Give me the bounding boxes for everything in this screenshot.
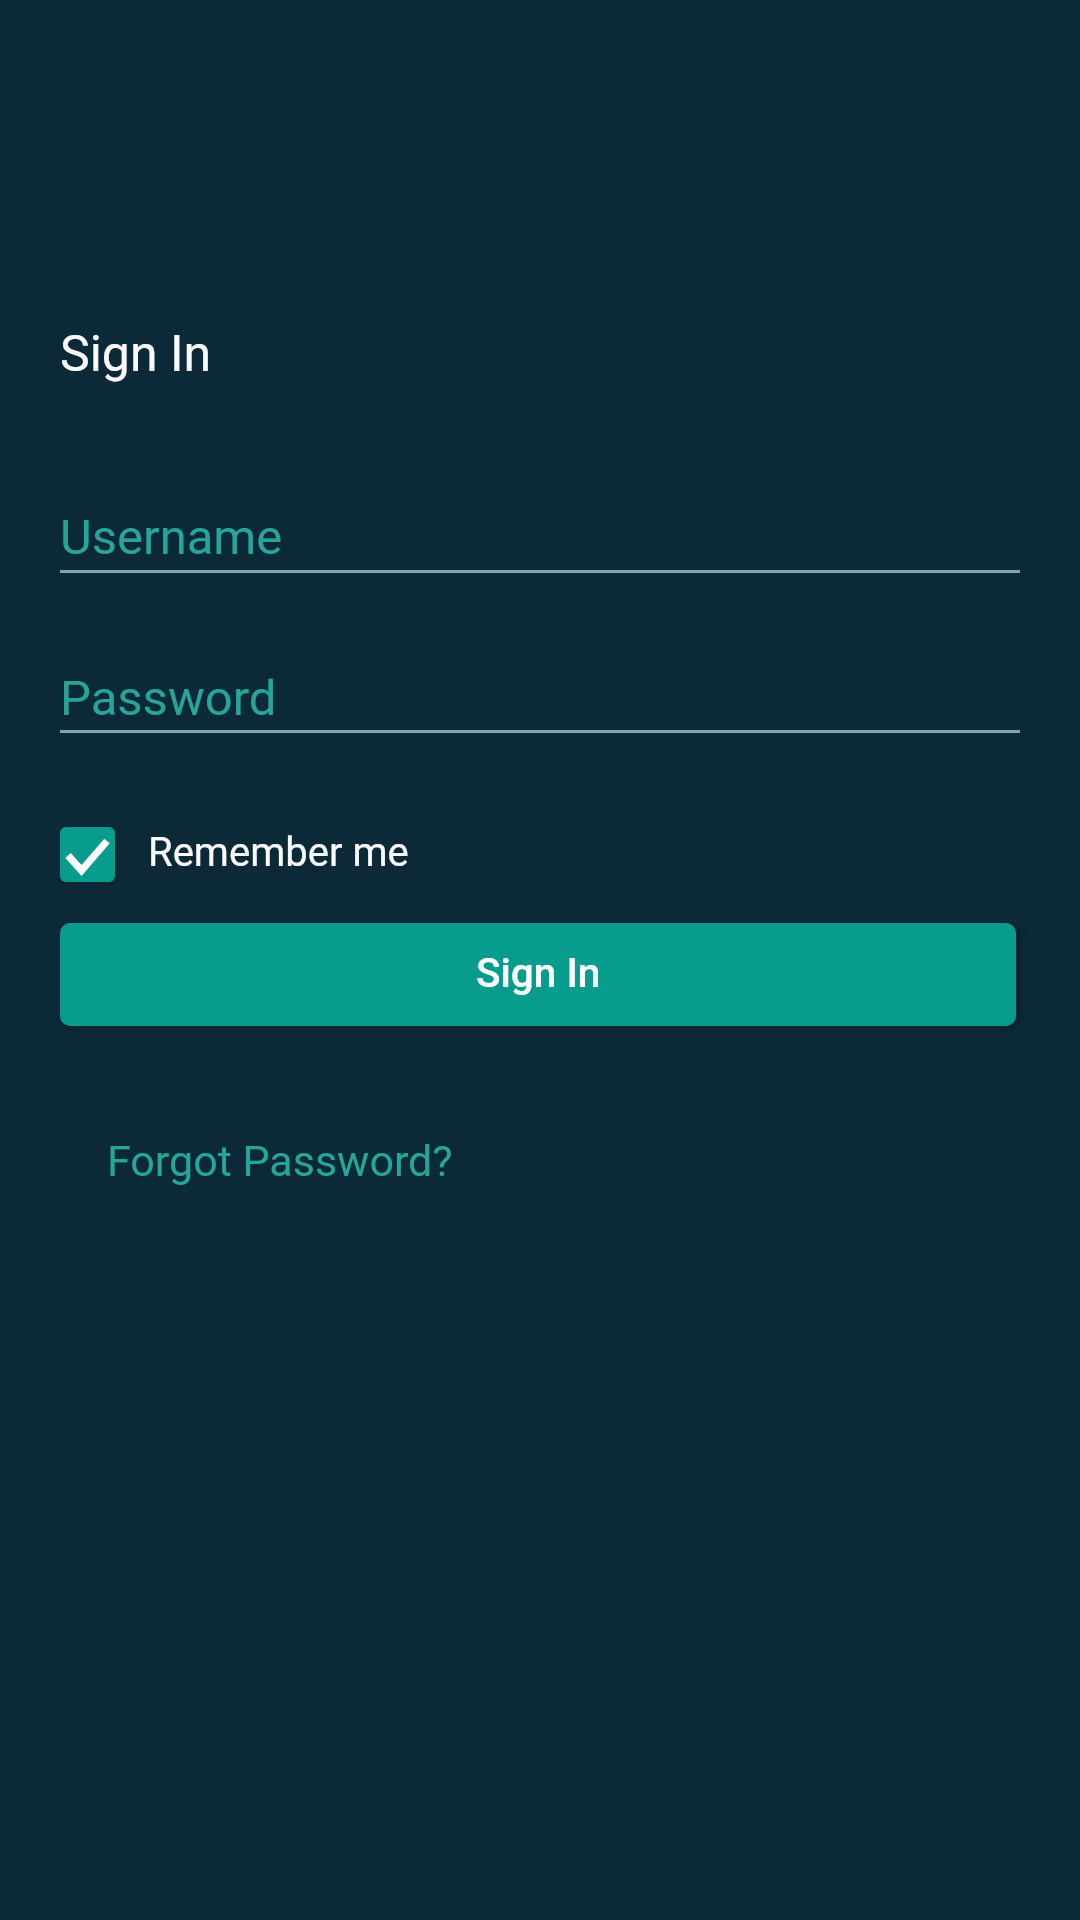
button[interactable] bbox=[60, 827, 115, 882]
staticText: Sign In bbox=[60, 325, 212, 384]
button[interactable]: Username bbox=[60, 495, 1020, 573]
staticText: Username bbox=[60, 509, 283, 566]
button[interactable]: Sign In bbox=[60, 923, 1016, 1026]
staticText: Remember me bbox=[148, 829, 409, 876]
staticText: Sign In bbox=[476, 949, 601, 996]
button[interactable]: Password bbox=[60, 655, 1020, 733]
staticText: Forgot Password? bbox=[107, 1136, 453, 1186]
button[interactable]: Forgot Password? bbox=[86, 1100, 466, 1200]
staticText: Password bbox=[60, 670, 277, 727]
